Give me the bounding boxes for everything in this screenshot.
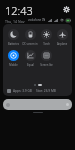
staticText: Batteries saver (5, 42, 22, 46)
button[interactable]: Settings (62, 5, 71, 14)
staticText: 12:43 (5, 3, 33, 18)
staticText: Torch (43, 42, 50, 46)
staticText: vodafone IN (28, 18, 46, 22)
staticText: Airplane mode (54, 42, 70, 46)
staticText: Apps: 3.9 GB (13, 89, 32, 93)
staticText: DC screen in (22, 42, 38, 46)
button[interactable]: DC screen in (22, 28, 38, 47)
staticText: Screen lite (40, 63, 53, 67)
staticText: Stor: 26.9 MB (36, 89, 56, 93)
staticText: Thu, 14 Nov (5, 19, 25, 24)
button[interactable]: Airplane mode (54, 28, 70, 47)
staticText: Equal (27, 63, 34, 67)
button[interactable]: Screen lite (38, 49, 54, 68)
staticText: Mobile hotspot (5, 63, 22, 67)
button[interactable] (3, 99, 72, 110)
button[interactable]: Torch (38, 28, 54, 47)
button[interactable]: Batteries saver (5, 28, 22, 47)
button[interactable]: Equal (22, 49, 38, 68)
button[interactable]: Mobile hotspot (5, 49, 22, 68)
